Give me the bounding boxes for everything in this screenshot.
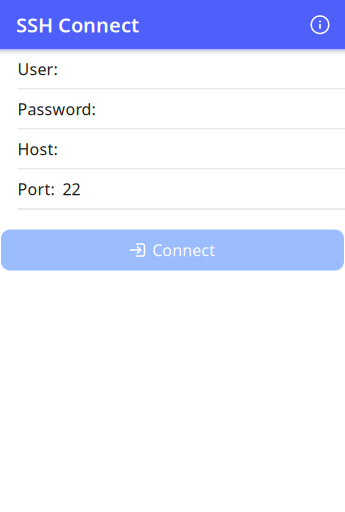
button[interactable]: User: [0,49,345,88]
button[interactable]: Host: [0,129,345,168]
staticText: Connect [152,239,215,261]
staticText: Host: [17,138,57,160]
button[interactable]: Password: [0,89,345,128]
staticText: Password: [17,98,95,120]
staticText: SSH Connect [16,11,139,38]
button[interactable]: Connect [1,229,344,270]
button[interactable]: Info [301,6,339,44]
button[interactable]: Port: [0,169,345,208]
staticText: Port: [17,178,54,200]
staticText: 22 [62,178,80,200]
staticText: User: [17,58,57,80]
